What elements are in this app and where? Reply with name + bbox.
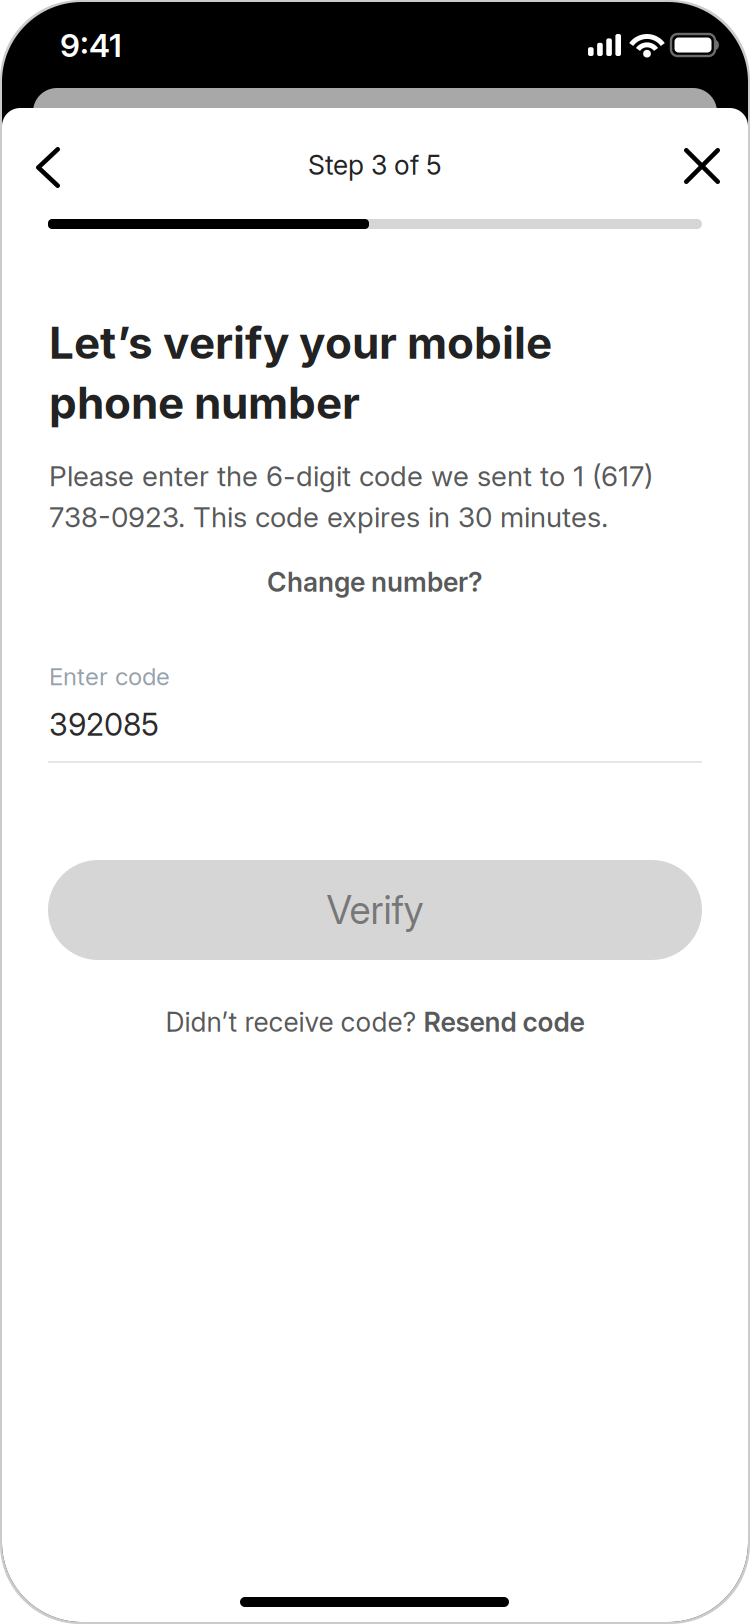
staticText: Resend code <box>423 1006 584 1038</box>
staticText: phone number <box>49 376 360 429</box>
staticText: Please enter the 6-digit code we sent to… <box>49 459 653 493</box>
staticText: Let’s verify your mobile <box>49 316 552 369</box>
staticText: Change number? <box>267 566 483 598</box>
staticText: 392085 <box>49 706 159 743</box>
button[interactable]: Change number? <box>48 562 702 602</box>
staticText: Enter code <box>49 662 170 691</box>
staticText: 9:41 <box>60 26 122 65</box>
staticText: Didn’t receive code? <box>165 1006 423 1038</box>
button[interactable]: Back <box>18 129 78 206</box>
staticText: Verify <box>326 887 423 933</box>
staticText: Step 3 of 5 <box>308 149 442 181</box>
staticText: 738-0923. This code expires in 30 minute… <box>49 500 608 534</box>
button[interactable]: Verify <box>48 860 702 960</box>
button[interactable]: Close <box>666 130 738 202</box>
button[interactable]: Didn’t receive code? <box>48 1000 702 1044</box>
